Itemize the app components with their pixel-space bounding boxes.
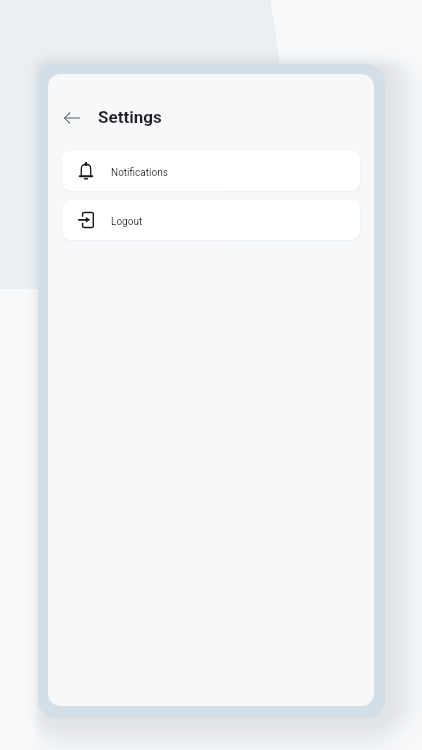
button[interactable]: Notifications (62, 151, 360, 191)
button[interactable]: Logout (62, 200, 360, 240)
staticText: Notifications (111, 167, 168, 179)
staticText: Settings (98, 107, 162, 127)
staticText: Logout (111, 216, 143, 228)
button[interactable]: Back (54, 100, 90, 136)
